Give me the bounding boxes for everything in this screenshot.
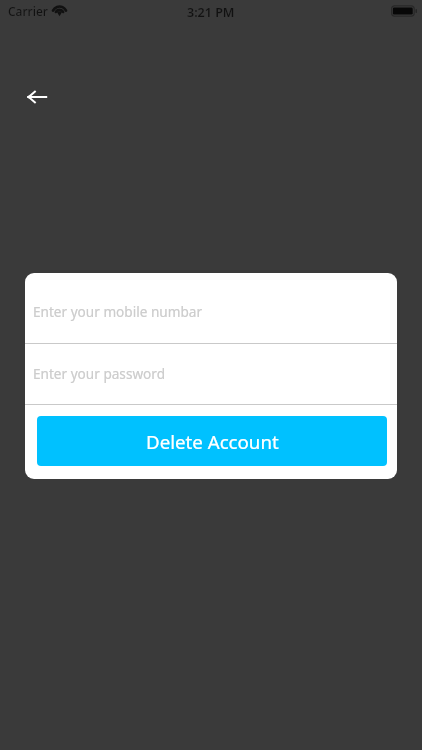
button[interactable]: Back (17, 77, 57, 117)
button[interactable]: Enter your password (25, 344, 397, 404)
button[interactable]: Delete Account (37, 416, 387, 466)
staticText: Carrier (8, 3, 48, 19)
button[interactable]: Enter your mobile numbar (25, 273, 397, 343)
staticText: Enter your password (33, 364, 166, 383)
staticText: 3:21 PM (187, 4, 235, 21)
staticText: Delete Account (146, 429, 279, 454)
staticText: Enter your mobile numbar (33, 302, 203, 321)
